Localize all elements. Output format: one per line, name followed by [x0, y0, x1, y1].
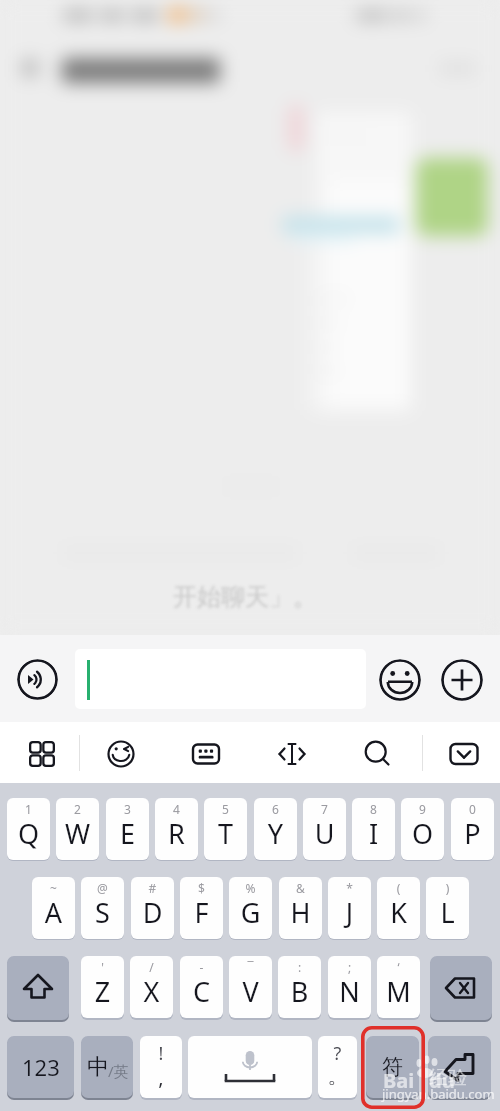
staticText: 5 [204, 801, 247, 817]
staticText: ! [140, 1041, 182, 1066]
staticText: I [352, 815, 395, 852]
button[interactable]: 8 [352, 798, 395, 860]
staticText: T [204, 815, 247, 852]
staticText: E [106, 815, 149, 852]
button[interactable]: 4 [155, 798, 198, 860]
staticText: , [140, 1064, 182, 1091]
staticText: * [328, 880, 371, 896]
button[interactable]: ' [81, 956, 124, 1018]
button[interactable]: Chinese English toggle [81, 1036, 133, 1098]
staticText: F [180, 894, 223, 931]
button[interactable]: Hide keyboard [424, 725, 500, 783]
staticText: % [229, 880, 272, 896]
button[interactable]: : [278, 956, 321, 1018]
staticText: jingyan.baidu.com [382, 1085, 495, 1103]
staticText: ' [81, 959, 124, 975]
staticText: X [130, 973, 173, 1010]
staticText: ( [377, 880, 420, 896]
staticText: U [303, 815, 346, 852]
staticText: 4 [155, 801, 198, 817]
staticText: 符 [382, 1054, 403, 1080]
button[interactable]: Numbers [7, 1036, 74, 1098]
staticText: ~ [32, 880, 75, 896]
staticText: Q [7, 815, 50, 852]
button[interactable]: / [130, 956, 173, 1018]
button[interactable]: Period [318, 1036, 357, 1098]
button[interactable]: ; [328, 956, 371, 1018]
button[interactable]: Comma [140, 1036, 182, 1098]
button[interactable]: Move cursor [252, 725, 332, 783]
button[interactable]: Search [338, 725, 418, 783]
button[interactable]: Emoji [379, 659, 421, 701]
staticText: 中 [87, 1053, 109, 1081]
staticText: ‘ [377, 959, 420, 975]
staticText: S [81, 894, 124, 931]
staticText: - [180, 959, 223, 975]
button[interactable]: 7 [303, 798, 346, 860]
staticText: / [130, 959, 173, 975]
button[interactable]: Voice message [17, 659, 58, 700]
button[interactable]: Keyboard panels [2, 725, 82, 783]
button[interactable]: 1 [7, 798, 50, 860]
staticText: O [401, 815, 444, 852]
button[interactable]: # [131, 877, 174, 939]
staticText: @ [81, 880, 124, 896]
button[interactable]: Space [188, 1036, 312, 1098]
button[interactable]: Symbols [366, 1036, 419, 1098]
button[interactable]: Enter [428, 1036, 491, 1098]
button[interactable]: ~ [32, 877, 75, 939]
staticText: 。 [318, 1064, 357, 1089]
button[interactable]: - [180, 956, 223, 1018]
button[interactable]: % [229, 877, 272, 939]
button[interactable]: @ [81, 877, 124, 939]
button[interactable]: Shift [7, 956, 69, 1020]
staticText: K [377, 894, 420, 931]
staticText: R [155, 815, 198, 852]
button[interactable]: ( [377, 877, 420, 939]
button[interactable]: 9 [401, 798, 444, 860]
button[interactable]: More functions [441, 659, 483, 701]
staticText: 6 [254, 801, 297, 817]
button[interactable]: 6 [254, 798, 297, 860]
staticText: L [426, 894, 469, 931]
button[interactable]: * [328, 877, 371, 939]
button[interactable]: 2 [56, 798, 99, 860]
staticText: & [279, 880, 322, 896]
button[interactable]: & [279, 877, 322, 939]
button[interactable]: Keyboard layout [166, 725, 246, 783]
staticText: H [279, 894, 322, 931]
staticText: W [56, 815, 99, 852]
staticText: ) [426, 880, 469, 896]
staticText: Bai [383, 1067, 415, 1094]
button[interactable]: ‘ [377, 956, 420, 1018]
staticText: 开始聊天」。 [173, 582, 317, 612]
button[interactable]: 0 [451, 798, 494, 860]
staticText: 9 [401, 801, 444, 817]
button[interactable]: ) [426, 877, 469, 939]
button[interactable]: Backspace [430, 956, 492, 1020]
staticText: N [328, 973, 371, 1010]
staticText: ? [318, 1041, 357, 1066]
staticText: ¯ [229, 959, 272, 975]
staticText: $ [180, 880, 223, 896]
staticText: G [229, 894, 272, 931]
staticText: 1 [7, 801, 50, 817]
staticText: C [180, 973, 223, 1010]
button[interactable]: $ [180, 877, 223, 939]
staticText: 8 [352, 801, 395, 817]
staticText: : [278, 959, 321, 975]
staticText: D [131, 894, 174, 931]
staticText: 7 [303, 801, 346, 817]
button[interactable] [75, 649, 366, 709]
staticText: Y [254, 815, 297, 852]
staticText: du [429, 1067, 455, 1094]
staticText: Z [81, 973, 124, 1010]
staticText: 3 [106, 801, 149, 817]
staticText: A [32, 894, 75, 931]
staticText: ; [328, 959, 371, 975]
button[interactable]: 3 [106, 798, 149, 860]
button[interactable]: 5 [204, 798, 247, 860]
staticText: V [229, 973, 272, 1010]
button[interactable]: Stickers [81, 725, 161, 783]
button[interactable]: ¯ [229, 956, 272, 1018]
